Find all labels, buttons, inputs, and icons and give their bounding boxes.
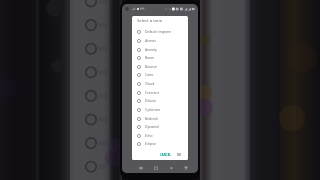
staticText: Eclipse [145,141,156,146]
staticText: Cloud [145,81,155,86]
button[interactable]: Eclipse [132,139,188,148]
staticText: Bedrock [145,116,159,121]
staticText: Anxiety [145,47,157,52]
button[interactable]: Bedrock [132,114,188,123]
button[interactable]: Beam [132,53,188,62]
button[interactable]: CANCEL [159,151,172,159]
button[interactable]: Echo [132,131,188,140]
staticText: Select a tone [137,18,163,24]
staticText: Beam [145,55,155,60]
button[interactable]: Dynamel [132,122,188,131]
staticText: Deluxe [145,98,156,103]
button[interactable]: Recent apps [136,162,146,173]
staticText: Atomic [145,38,157,43]
button[interactable]: Atomic [132,36,188,45]
button[interactable]: OK [176,151,183,159]
staticText: Cairo [145,72,154,77]
staticText: Crescent [145,90,159,95]
staticText: Bounce [145,64,157,69]
button[interactable]: Default ringtone [132,27,188,36]
staticText: Default ringtone [145,29,172,34]
button[interactable]: Cloud [132,79,188,88]
button[interactable]: Bounce [132,62,188,71]
button[interactable]: Deluxe [132,96,188,105]
staticText: Echo [145,133,153,138]
button[interactable]: Crescent [132,88,188,97]
button[interactable]: Cairo [132,70,188,79]
staticText: Dynamel [145,124,160,129]
button[interactable]: Hide keyboard [181,162,191,173]
staticText: Cyclotron [145,107,161,112]
button[interactable]: Back [166,162,176,173]
button[interactable]: Cyclotron [132,105,188,114]
button[interactable]: Anxiety [132,45,188,54]
button[interactable]: Home [151,162,161,173]
